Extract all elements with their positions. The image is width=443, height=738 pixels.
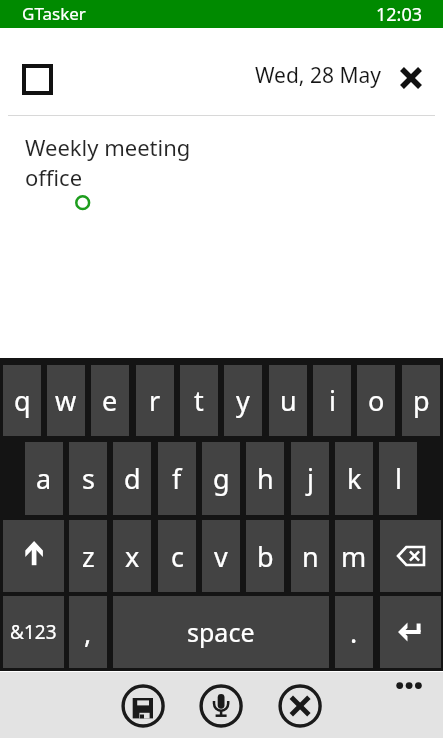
staticText: a [36,460,52,497]
staticText: q [14,382,31,419]
button[interactable] [380,596,441,668]
button[interactable]: l [379,442,417,515]
staticText: GTasker [22,2,86,25]
button[interactable] [121,684,165,728]
button[interactable]: u [269,365,307,436]
staticText: &123 [10,619,57,645]
button[interactable]: . [335,596,373,668]
button[interactable]: e [91,365,129,436]
staticText: g [213,460,230,497]
button[interactable] [199,684,243,728]
button[interactable]: z [69,520,107,592]
button[interactable]: h [246,442,284,515]
staticText: m [341,538,367,575]
button[interactable]: d [113,442,151,515]
button[interactable]: g [202,442,240,515]
button[interactable]: , [69,596,107,668]
button[interactable]: i [313,365,351,436]
button[interactable]: w [47,365,85,436]
button[interactable]: j [291,442,329,515]
button[interactable]: a [25,442,63,515]
button[interactable]: n [291,520,329,592]
button[interactable] [393,679,425,693]
staticText: s [82,460,95,497]
staticText: n [302,538,319,575]
staticText: o [368,382,385,419]
staticText: i [329,382,336,419]
staticText: e [102,382,118,419]
button[interactable]: v [202,520,240,592]
button[interactable]: y [224,365,262,436]
staticText: p [413,382,430,419]
staticText: k [347,460,362,497]
staticText: u [280,382,297,419]
staticText: r [149,382,161,419]
staticText: Wed, 28 May [255,61,381,90]
button[interactable]: x [113,520,151,592]
staticText: b [257,538,274,575]
button[interactable]: f [158,442,196,515]
staticText: Weekly meeting office [25,132,191,192]
staticText: . [350,614,358,651]
button[interactable]: space [113,596,329,668]
button[interactable] [3,520,64,592]
staticText: z [82,538,95,575]
button[interactable]: c [158,520,196,592]
staticText: w [55,382,77,419]
staticText: h [257,460,274,497]
button[interactable] [278,684,322,728]
button[interactable] [400,67,422,89]
staticText: space [187,615,255,649]
staticText: y [236,382,250,419]
button[interactable]: q [3,365,41,436]
button[interactable]: k [335,442,373,515]
button[interactable] [380,520,441,592]
staticText: t [194,382,204,419]
staticText: v [214,538,228,575]
staticText: d [124,460,141,497]
staticText: c [171,538,184,575]
button[interactable]: o [357,365,395,436]
button[interactable]: m [335,520,373,592]
button[interactable]: t [180,365,218,436]
staticText: , [84,614,92,651]
button[interactable] [22,64,53,95]
button[interactable]: p [402,365,440,436]
staticText: l [395,460,402,497]
staticText: f [172,460,182,497]
button[interactable]: b [246,520,284,592]
staticText: j [307,460,314,497]
staticText: 12:03 [376,2,423,27]
button[interactable]: &123 [3,596,64,668]
button[interactable]: s [69,442,107,515]
staticText: x [125,538,140,575]
button[interactable]: r [136,365,174,436]
